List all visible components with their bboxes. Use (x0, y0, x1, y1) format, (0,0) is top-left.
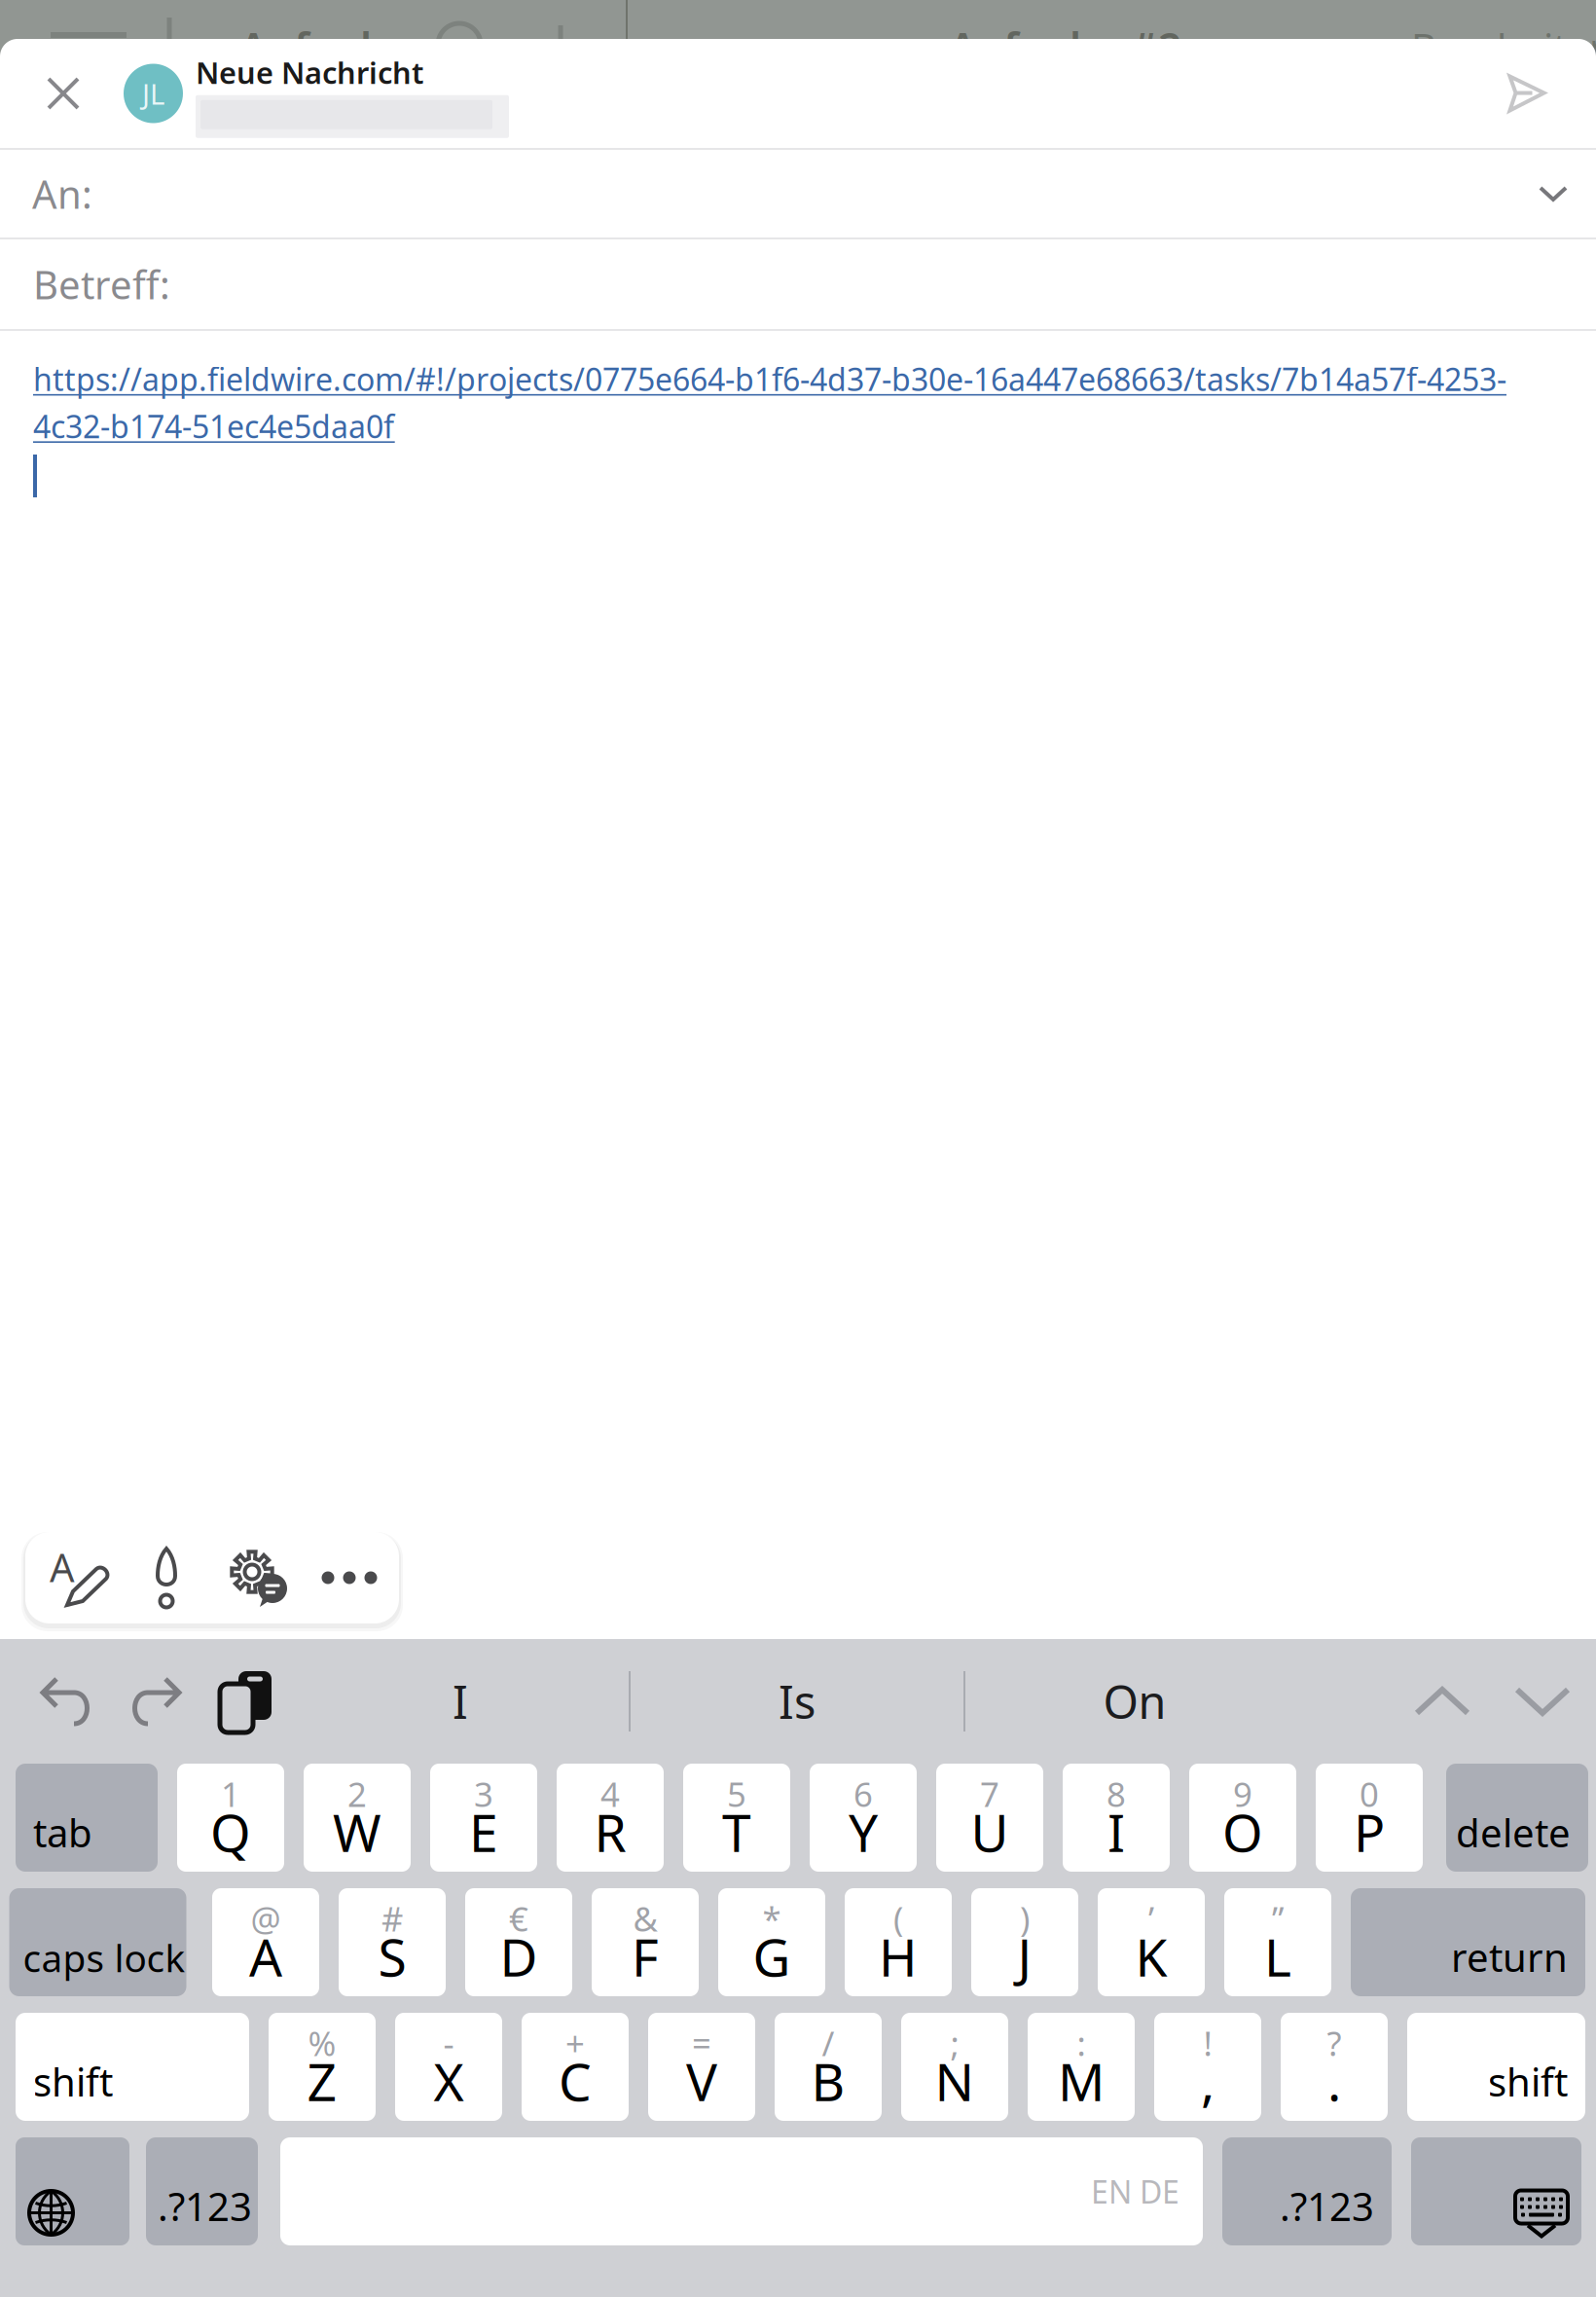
staticText: Betreff: (33, 258, 170, 310)
button[interactable]: shift (1407, 2013, 1585, 2121)
staticText: / (822, 2021, 834, 2065)
button[interactable]: Change keyboard (16, 2137, 129, 2245)
button[interactable]: 3 (430, 1764, 537, 1872)
button[interactable]: 0 (1316, 1764, 1423, 1872)
staticText: V (686, 2046, 717, 2115)
button[interactable]: / (775, 2013, 882, 2121)
staticText: ) (1020, 1896, 1030, 1941)
staticText: = (692, 2021, 711, 2065)
button[interactable]: : (1028, 2013, 1135, 2121)
staticText: J (1017, 1922, 1032, 1991)
staticText: + (565, 2021, 585, 2065)
button[interactable]: 5 (683, 1764, 790, 1872)
button[interactable]: + (522, 2013, 629, 2121)
staticText: ’ (1148, 1896, 1154, 1941)
button[interactable]: More (304, 1532, 395, 1623)
staticText: Aufgabe #2 (949, 19, 1181, 75)
staticText: shift (33, 2056, 113, 2107)
button[interactable]: delete (1442, 1764, 1584, 1872)
staticText: G (753, 1922, 791, 1991)
staticText: .?123 (158, 2180, 252, 2232)
staticText: X (434, 2046, 464, 2115)
button[interactable]: € (465, 1888, 572, 1996)
button[interactable]: 9 (1189, 1764, 1296, 1872)
button[interactable]: Send (1464, 39, 1590, 148)
staticText: H (879, 1922, 918, 1991)
button[interactable]: & (592, 1888, 699, 1996)
button[interactable]: Paste (199, 1639, 292, 1764)
button[interactable]: ) (971, 1888, 1078, 1996)
button[interactable]: Mark as important (121, 1532, 212, 1623)
button[interactable]: Hide keyboard (1411, 2137, 1581, 2245)
button[interactable]: Text format (29, 1532, 121, 1623)
staticText: Z (307, 2046, 337, 2115)
button[interactable]: ’ (1098, 1888, 1205, 1996)
button[interactable]: shift (16, 2013, 249, 2121)
staticText: I (1107, 1797, 1125, 1866)
button[interactable]: ( (845, 1888, 952, 1996)
staticText: D (500, 1922, 538, 1991)
staticText: shift (1488, 2056, 1568, 2107)
staticText: K (1135, 1922, 1167, 1991)
button[interactable]: % (269, 2013, 376, 2121)
staticText: 3 (474, 1771, 493, 1816)
button[interactable]: 7 (936, 1764, 1043, 1872)
staticText: - (443, 2021, 454, 2065)
staticText: 1 (221, 1771, 240, 1816)
button[interactable]: tab (16, 1764, 158, 1872)
button[interactable]: 8 (1063, 1764, 1170, 1872)
button[interactable]: ; (901, 2013, 1008, 2121)
staticText: A (249, 1922, 282, 1991)
staticText: An: (32, 168, 92, 219)
staticText: 0 (1360, 1771, 1379, 1816)
button[interactable]: Close (16, 39, 111, 148)
staticText: M (1058, 2046, 1105, 2115)
button[interactable]: * (718, 1888, 825, 1996)
staticText: N (935, 2046, 975, 2115)
button[interactable]: Next (1489, 1639, 1596, 1764)
staticText: Neue Nachricht (196, 53, 423, 92)
button[interactable]: Undo (23, 1639, 111, 1764)
staticText: & (633, 1896, 657, 1941)
staticText: L (1264, 1922, 1291, 1991)
staticText: F (632, 1922, 659, 1991)
button[interactable]: ! (1154, 2013, 1261, 2121)
staticText: 4c32-b174-51ec4e5daa0f (33, 405, 394, 447)
button[interactable]: Is (631, 1639, 963, 1764)
staticText: delete (1456, 1806, 1571, 1858)
staticText: .?123 (1280, 2180, 1374, 2232)
staticText: 7 (980, 1771, 999, 1816)
button[interactable]: Account (111, 39, 196, 148)
button[interactable]: 4 (557, 1764, 664, 1872)
button[interactable]: ” (1224, 1888, 1331, 1996)
button[interactable]: Previous (1396, 1639, 1489, 1764)
staticText: % (308, 2021, 336, 2065)
button[interactable]: On (965, 1639, 1304, 1764)
staticText: 5 (727, 1771, 746, 1816)
button[interactable]: 2 (304, 1764, 411, 1872)
button[interactable]: .?123 (1222, 2137, 1392, 2245)
staticText: I (453, 1671, 468, 1732)
button[interactable]: Space (280, 2137, 1203, 2245)
button[interactable]: @ (212, 1888, 319, 1996)
button[interactable]: 6 (810, 1764, 917, 1872)
staticText: Q (210, 1797, 251, 1866)
staticText: 6 (853, 1771, 873, 1816)
button[interactable]: = (648, 2013, 755, 2121)
button[interactable]: I (292, 1639, 629, 1764)
button[interactable]: return (1351, 1888, 1585, 1996)
button[interactable]: .?123 (149, 2137, 261, 2245)
button[interactable]: ? (1281, 2013, 1388, 2121)
button[interactable]: - (395, 2013, 502, 2121)
button[interactable]: 1 (177, 1764, 284, 1872)
button[interactable]: Settings (212, 1532, 304, 1623)
staticText: R (594, 1797, 626, 1866)
button[interactable]: Show Cc Bcc (1510, 150, 1596, 237)
staticText: 2 (347, 1771, 367, 1816)
staticText: 8 (1106, 1771, 1126, 1816)
button[interactable]: Redo (111, 1639, 199, 1764)
staticText: Is (779, 1671, 816, 1732)
button[interactable]: caps lock (16, 1888, 193, 1996)
staticText: https://app.fieldwire.com/#!/projects/07… (33, 358, 1506, 400)
button[interactable]: # (339, 1888, 446, 1996)
